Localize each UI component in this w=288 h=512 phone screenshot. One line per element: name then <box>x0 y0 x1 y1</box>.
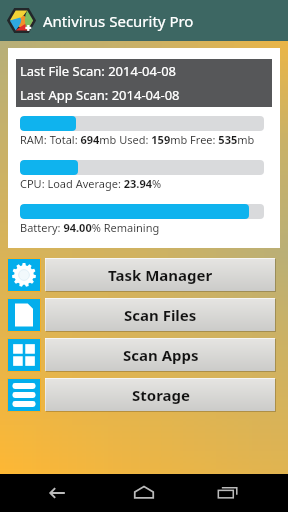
button[interactable]: Scan Apps <box>7 338 41 372</box>
button[interactable]: Scan Files <box>7 298 41 332</box>
button[interactable]: Task Manager <box>7 258 41 292</box>
staticText: Scan Files <box>124 305 197 325</box>
button[interactable]: Scan Files <box>45 298 276 332</box>
button[interactable]: Recents <box>204 474 252 512</box>
button[interactable]: Storage <box>45 378 276 412</box>
button[interactable]: Task Manager <box>45 258 276 292</box>
button[interactable]: Back <box>36 474 84 512</box>
staticText: Antivirus Security Pro <box>43 11 194 31</box>
staticText: CPU: Load Average: 23.94% <box>20 176 162 191</box>
staticText: Battery: 94.00% Remaining <box>20 220 160 235</box>
button[interactable]: Storage <box>7 378 41 412</box>
button[interactable]: Scan Apps <box>45 338 276 372</box>
staticText: Storage <box>132 385 190 405</box>
staticText: RAM: Total: 694mb Used: 159mb Free: 535m… <box>20 132 255 147</box>
staticText: Last File Scan: 2014-04-08 <box>20 62 177 80</box>
staticText: Scan Apps <box>123 345 199 365</box>
staticText: Task Manager <box>108 265 213 285</box>
button[interactable]: Home <box>120 474 168 512</box>
staticText: Last App Scan: 2014-04-08 <box>20 86 180 104</box>
